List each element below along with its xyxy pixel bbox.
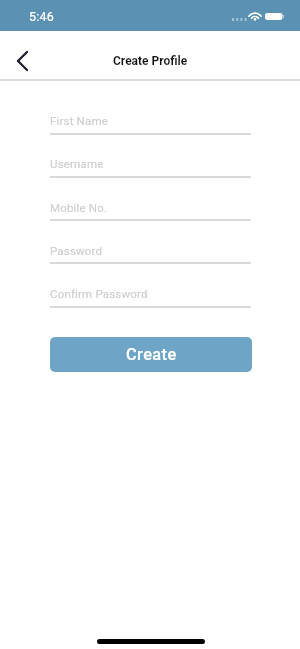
button[interactable]: First Name (50, 109, 251, 134)
staticText: Password (50, 244, 103, 257)
staticText: Username (50, 157, 104, 170)
staticText: 5:46 (29, 9, 54, 24)
button[interactable]: Back (5, 43, 41, 79)
staticText: First Name (50, 114, 108, 127)
staticText: Create Profile (113, 54, 188, 68)
button[interactable]: Password (50, 239, 251, 264)
staticText: Mobile No. (50, 201, 108, 214)
button[interactable]: Mobile No. (50, 196, 251, 221)
staticText: Confirm Password (50, 287, 148, 300)
staticText: Create (126, 345, 177, 364)
button[interactable]: Confirm Password (50, 282, 251, 307)
button[interactable]: Create (50, 337, 252, 372)
button[interactable]: Username (50, 152, 251, 177)
